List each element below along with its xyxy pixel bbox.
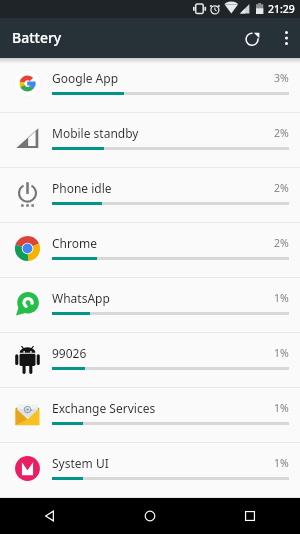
staticText: Chrome (52, 235, 274, 251)
staticText: 1% (274, 401, 289, 415)
staticText: Google App (52, 70, 274, 86)
staticText: 1% (274, 456, 289, 470)
staticText: 21:29 (268, 2, 295, 16)
staticText: 1% (274, 346, 289, 360)
staticText: Battery (12, 28, 62, 47)
button[interactable]: Google App (0, 58, 300, 113)
button[interactable]: More options (272, 18, 300, 58)
button[interactable]: Recents (200, 498, 300, 534)
staticText: 3% (274, 71, 289, 85)
button[interactable]: 99026 (0, 333, 300, 388)
button[interactable]: System UI (0, 443, 300, 498)
button[interactable]: Exchange Services (0, 388, 300, 443)
button[interactable]: Phone idle (0, 168, 300, 223)
staticText: 2% (274, 126, 289, 140)
button[interactable]: Back (0, 498, 100, 534)
staticText: System UI (52, 455, 274, 471)
button[interactable]: WhatsApp (0, 278, 300, 333)
staticText: 2% (274, 236, 289, 250)
staticText: 1% (274, 291, 289, 305)
staticText: Exchange Services (52, 400, 274, 416)
button[interactable]: Mobile standby (0, 113, 300, 168)
staticText: 99026 (52, 345, 274, 361)
staticText: 2% (274, 181, 289, 195)
staticText: Phone idle (52, 180, 274, 196)
staticText: WhatsApp (52, 290, 274, 306)
button[interactable]: Refresh (232, 18, 272, 58)
staticText: Mobile standby (52, 125, 274, 141)
button[interactable]: Chrome (0, 223, 300, 278)
button[interactable]: Home (100, 498, 200, 534)
